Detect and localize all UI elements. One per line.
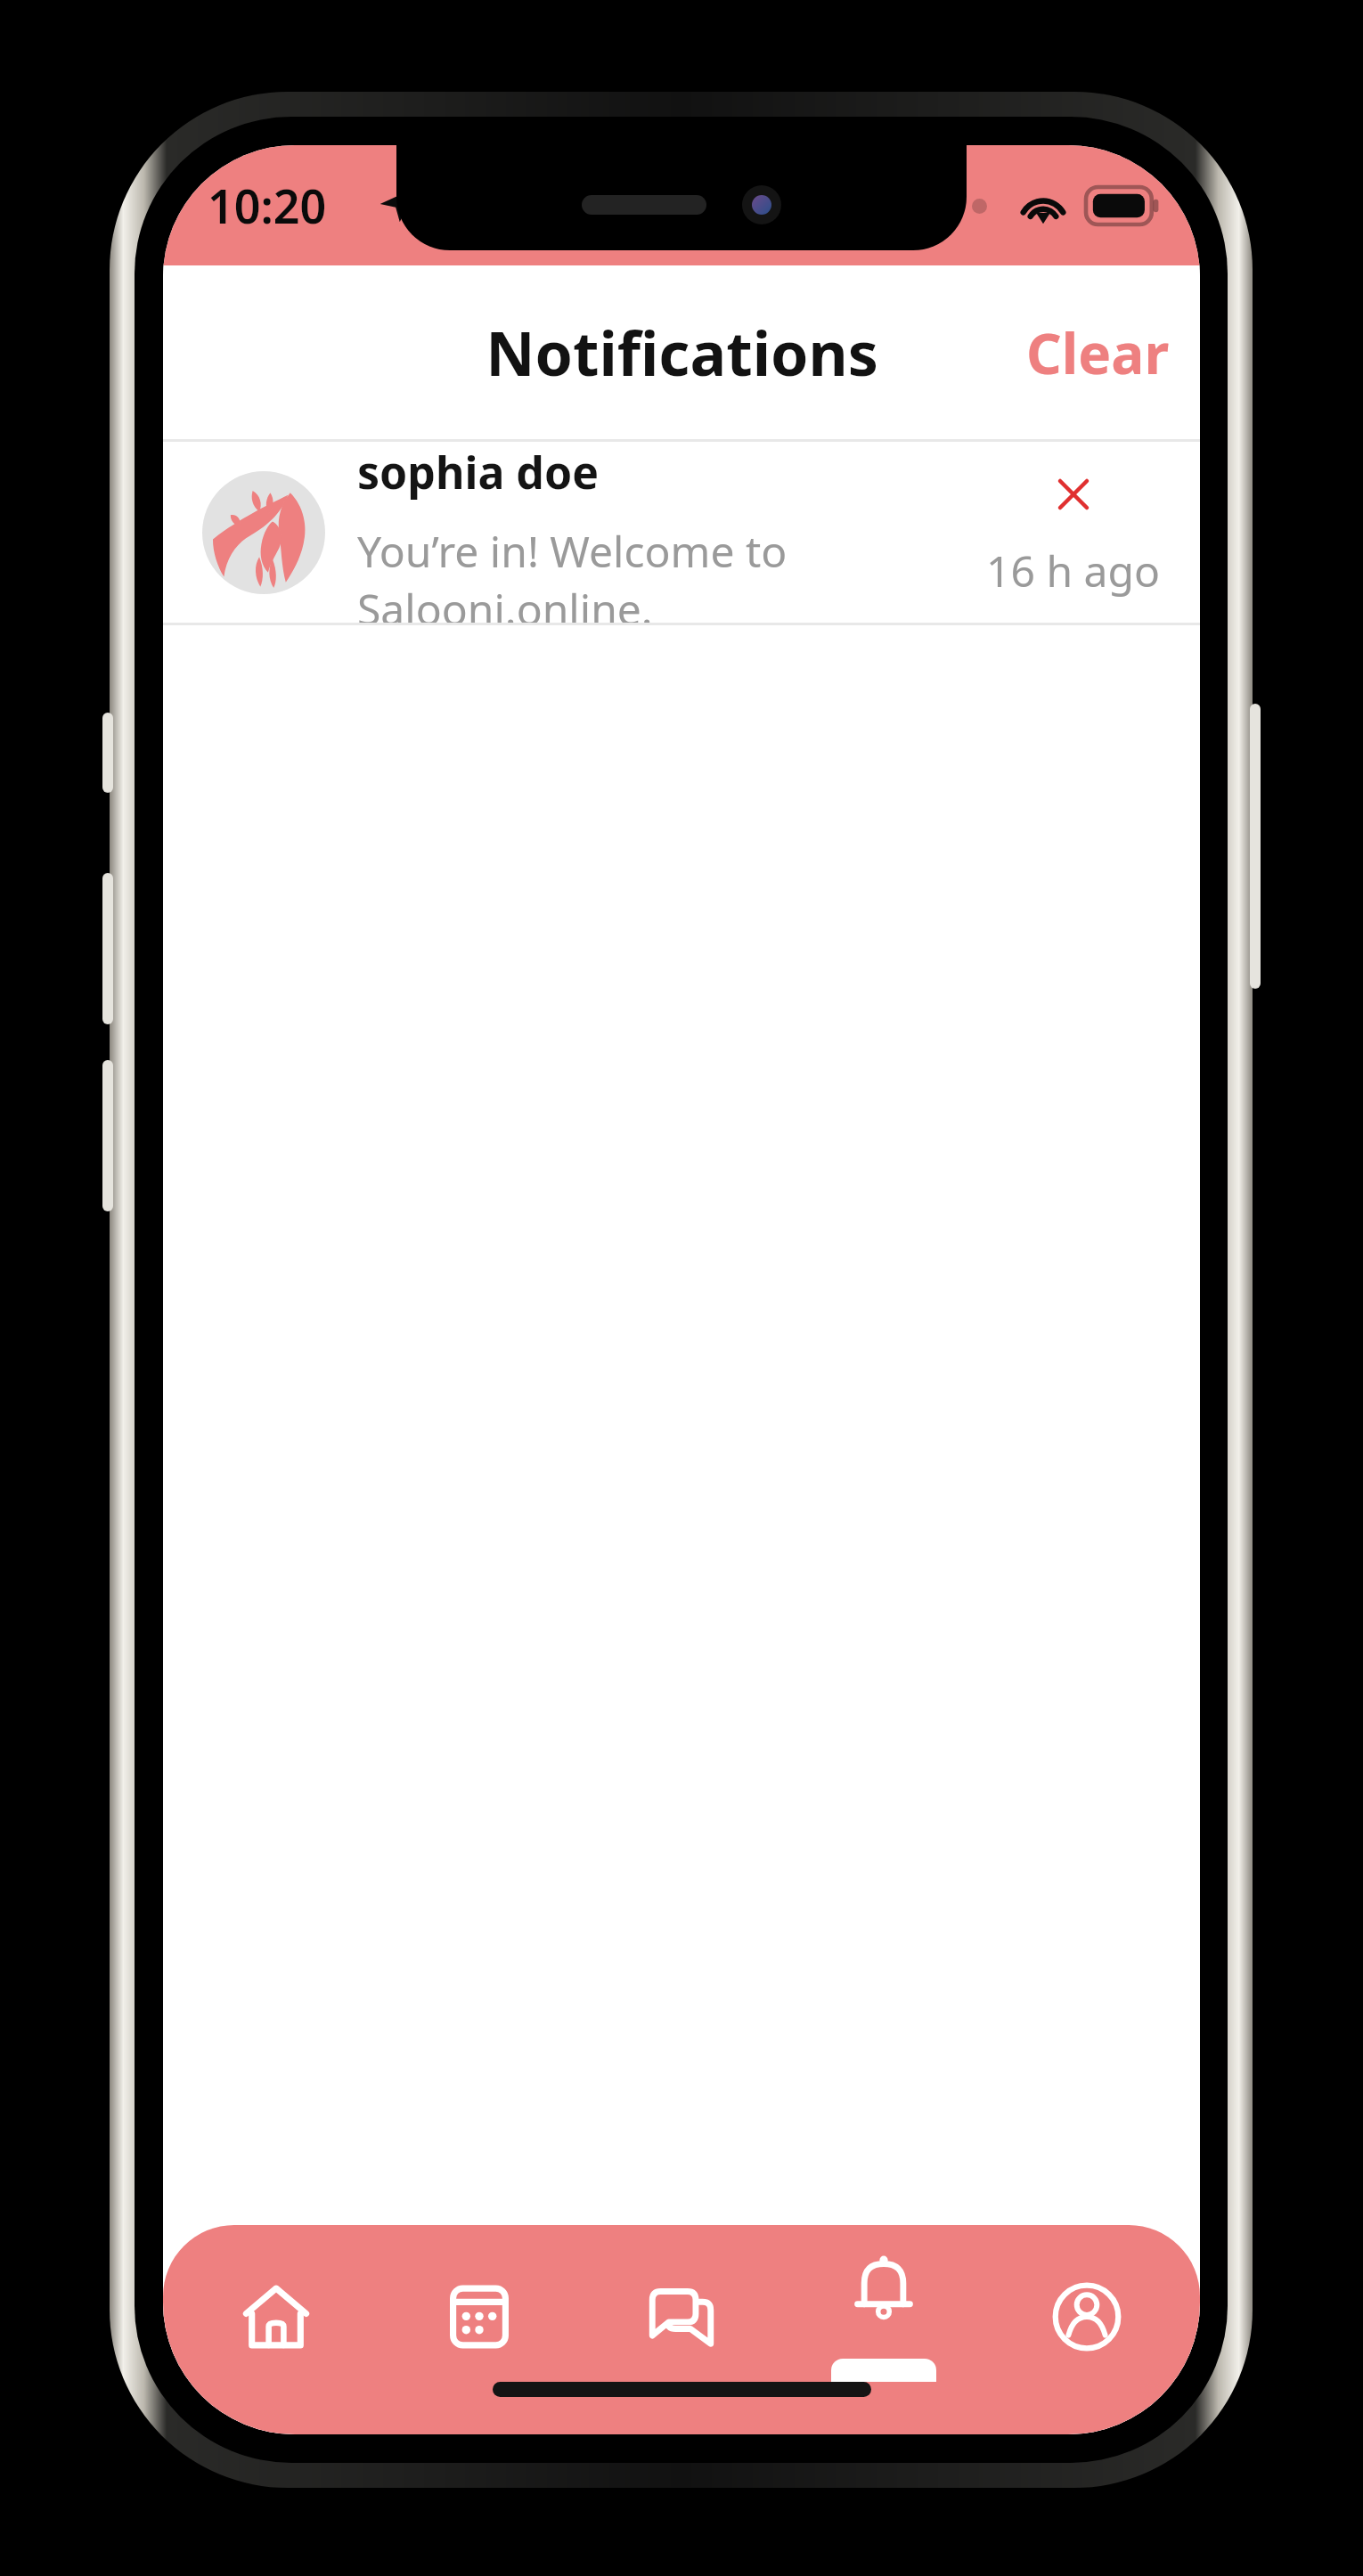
- staticText: 10:20: [208, 174, 327, 237]
- staticText: Clear: [1026, 315, 1170, 390]
- button[interactable]: Clear: [996, 296, 1200, 410]
- button[interactable]: Home: [187, 2250, 365, 2384]
- staticText: Notifications: [486, 311, 878, 394]
- button[interactable]: Notifications: [795, 2250, 973, 2384]
- staticText: sophia doe: [357, 442, 600, 502]
- button[interactable]: Profile: [998, 2250, 1176, 2384]
- button[interactable]: Dismiss notification: [1044, 465, 1103, 524]
- staticText: You’re in! Welcome to Salooni.online.: [357, 522, 974, 623]
- button[interactable]: sophia doe: [163, 442, 1200, 623]
- button[interactable]: Messages: [592, 2250, 771, 2384]
- button[interactable]: Calendar: [390, 2250, 568, 2384]
- staticText: 16 h ago: [986, 542, 1161, 599]
